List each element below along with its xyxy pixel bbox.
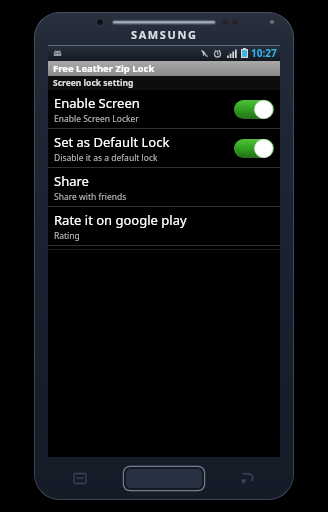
staticText: Enable Screen Locker: [54, 113, 139, 125]
staticText: Set as Default Lock: [54, 133, 170, 151]
button[interactable]: Rate it on google play: [48, 207, 280, 245]
staticText: Share: [54, 172, 89, 190]
button[interactable]: Enable Screen: [48, 90, 280, 128]
staticText: Rating: [54, 230, 80, 242]
staticText: Screen lock setting: [53, 77, 134, 89]
staticText: Free Leather Zip Lock: [53, 62, 155, 75]
button[interactable]: Free Leather Zip Lock: [48, 61, 280, 76]
staticText: SAMSUNG: [131, 27, 198, 42]
staticText: Disable it as a default lock: [54, 152, 158, 164]
button[interactable]: Toggle on: [234, 100, 274, 119]
staticText: 10:27: [251, 46, 277, 60]
staticText: Rate it on google play: [54, 211, 187, 229]
button[interactable]: Toggle on: [234, 139, 274, 158]
button[interactable]: Set as Default Lock: [48, 129, 280, 167]
staticText: Enable Screen: [54, 94, 140, 112]
button[interactable]: Share: [48, 168, 280, 206]
staticText: Share with friends: [54, 191, 127, 203]
